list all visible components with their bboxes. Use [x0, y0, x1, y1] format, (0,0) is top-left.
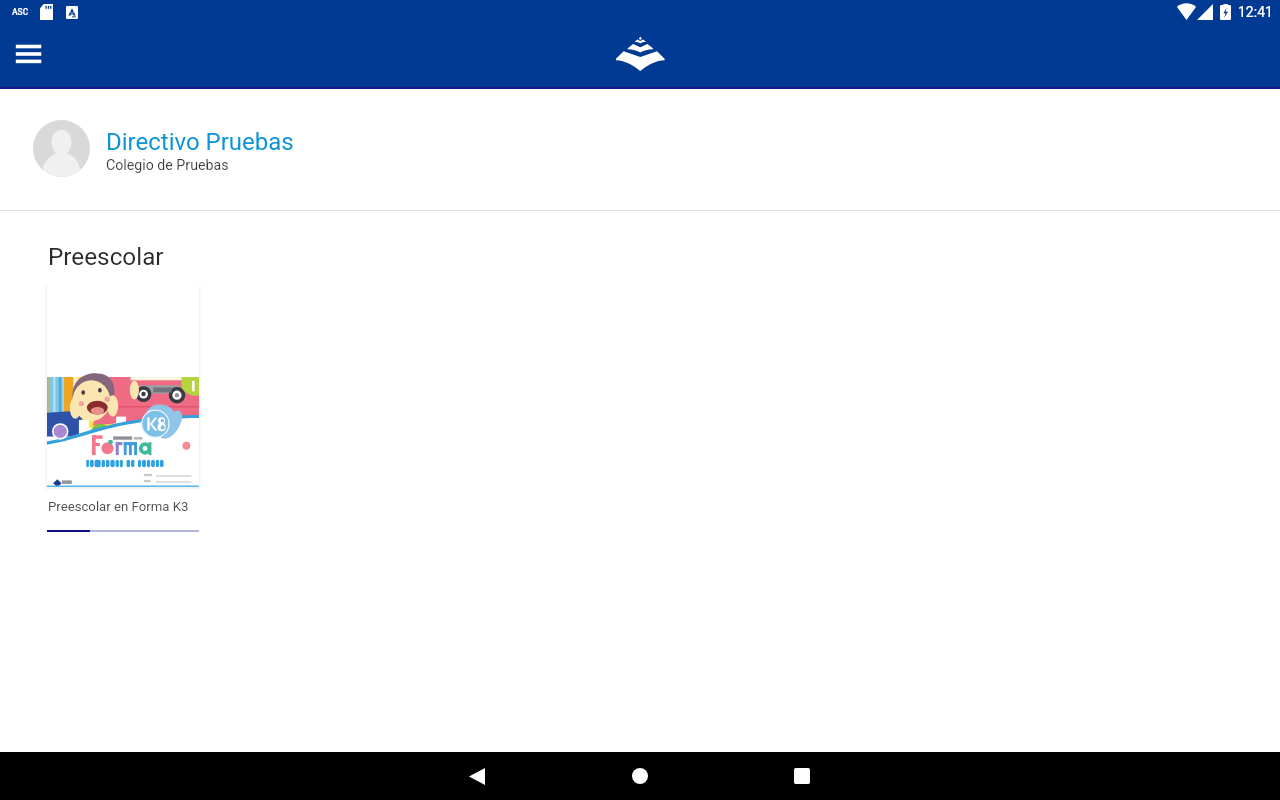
button[interactable]: Home	[604, 28, 676, 80]
button[interactable]: Preescolar en Forma K3	[47, 286, 199, 532]
button[interactable]: Back	[453, 752, 501, 800]
staticText: 12:41	[1238, 4, 1273, 20]
staticText: Colegio de Pruebas	[106, 157, 229, 174]
button[interactable]: Open navigation menu	[8, 33, 48, 73]
button[interactable]: Home	[616, 752, 664, 800]
staticText: Directivo Pruebas	[106, 128, 294, 156]
staticText: Preescolar en Forma K3	[48, 499, 189, 514]
staticText: Preescolar	[48, 242, 164, 270]
staticText: ASC	[12, 7, 29, 17]
button[interactable]: Recent apps	[778, 752, 826, 800]
button[interactable]: Directivo Pruebas	[0, 89, 1280, 211]
